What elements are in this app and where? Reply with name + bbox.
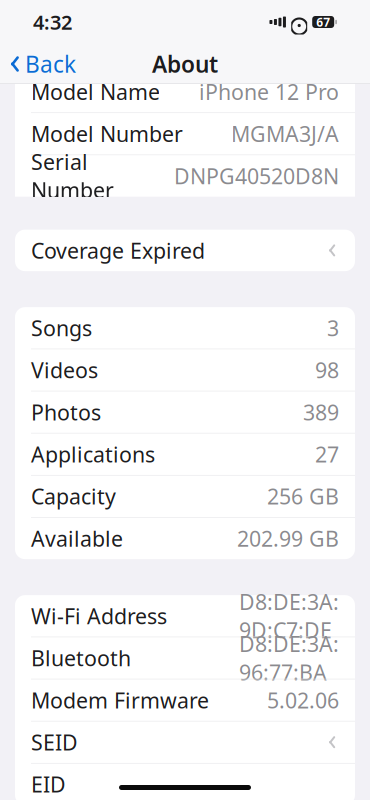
button[interactable]: Available (15, 518, 355, 559)
staticText: Wi-Fi Address (31, 602, 167, 630)
button[interactable]: Bluetooth (15, 637, 355, 679)
staticText: 256 GB (267, 482, 339, 510)
staticText: 5.02.06 (267, 686, 339, 714)
staticText: D8:DE:3A:96:77:BA (239, 630, 339, 686)
staticText: Capacity (31, 482, 116, 510)
staticText: 27 (315, 440, 339, 468)
staticText: Serial Number (31, 148, 114, 204)
staticText: Back (25, 49, 76, 79)
staticText: Modem Firmware (31, 686, 209, 714)
staticText: Songs (31, 314, 92, 342)
staticText: Available (31, 524, 123, 552)
staticText: SEID (31, 728, 78, 756)
staticText: Model Name (31, 77, 160, 106)
button[interactable]: Modem Firmware (15, 679, 355, 721)
staticText: Photos (31, 398, 101, 426)
staticText: D8:DE:3A:9D:C7:DE (239, 588, 339, 644)
staticText: Coverage Expired (31, 236, 205, 264)
button[interactable]: SEID (15, 721, 355, 763)
staticText: 67 (316, 14, 330, 30)
staticText: 4:32 (33, 9, 72, 35)
button[interactable]: EID (15, 763, 355, 800)
button[interactable]: Back (0, 45, 84, 83)
button[interactable]: Videos (15, 349, 355, 391)
staticText: iPhone 12 Pro (199, 77, 339, 106)
button[interactable]: Wi-Fi Address (15, 595, 355, 637)
staticText: DNPG40520D8N (174, 162, 339, 190)
staticText: MGMA3J/A (231, 120, 339, 148)
button[interactable]: Model Number (15, 113, 355, 155)
staticText: Model Number (31, 120, 183, 148)
staticText: Videos (31, 356, 98, 384)
staticText: 202.99 GB (237, 524, 339, 552)
staticText: Bluetooth (31, 644, 131, 672)
staticText: About (152, 49, 218, 79)
button[interactable]: Model Name (15, 71, 355, 112)
staticText: 389 (303, 398, 339, 426)
button[interactable]: Capacity (15, 476, 355, 517)
button[interactable]: Serial Number (15, 155, 355, 197)
button[interactable]: Applications (15, 433, 355, 475)
staticText: EID (31, 770, 66, 798)
button[interactable]: Songs (15, 307, 355, 349)
staticText: 3 (327, 314, 339, 342)
staticText: 98 (315, 356, 339, 384)
button[interactable]: Coverage Expired (15, 230, 355, 271)
staticText: Applications (31, 440, 155, 468)
button[interactable]: Photos (15, 391, 355, 433)
